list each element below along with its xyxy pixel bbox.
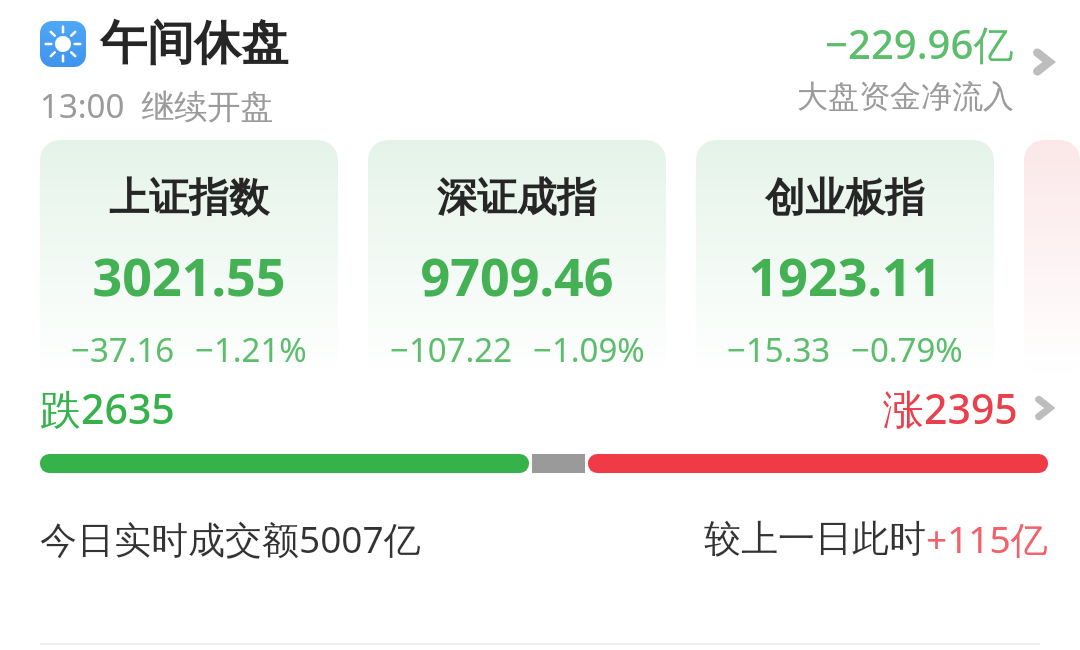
staticText: +115亿 [926, 513, 1048, 564]
staticText: 3021.55 [92, 240, 286, 311]
button[interactable]: 创业板指 [696, 140, 994, 378]
staticText: 涨2395 [883, 380, 1018, 436]
staticText: 1923.11 [748, 240, 942, 311]
button[interactable]: −229.96亿 [789, 0, 1080, 116]
staticText: −107.22 [390, 327, 513, 372]
staticText: 9709.46 [420, 240, 614, 311]
button[interactable]: 深证成指 [368, 140, 666, 378]
staticText: −1.21% [195, 327, 307, 372]
staticText: 深证成指 [437, 172, 597, 222]
staticText: 大盘资金净流入 [797, 77, 1014, 116]
staticText: −229.96亿 [825, 16, 1014, 71]
staticText: 跌2635 [40, 380, 175, 436]
staticText: 较上一日此时 [704, 515, 926, 562]
staticText: 今日实时成交额5007亿 [40, 513, 421, 564]
staticText: 创业板指 [765, 172, 925, 222]
staticText: −37.16 [71, 327, 175, 372]
staticText: 13:00 继续开盘 [40, 83, 274, 128]
staticText: 午间休盘 [100, 14, 288, 73]
other: Midday break [40, 21, 86, 67]
staticText: −1.09% [533, 327, 645, 372]
button[interactable] [1024, 140, 1080, 378]
staticText: 上证指数 [109, 172, 269, 222]
staticText: −0.79% [851, 327, 963, 372]
staticText: −15.33 [727, 327, 831, 372]
button[interactable]: 跌2635 [40, 380, 1056, 436]
button[interactable]: 上证指数 [40, 140, 338, 378]
